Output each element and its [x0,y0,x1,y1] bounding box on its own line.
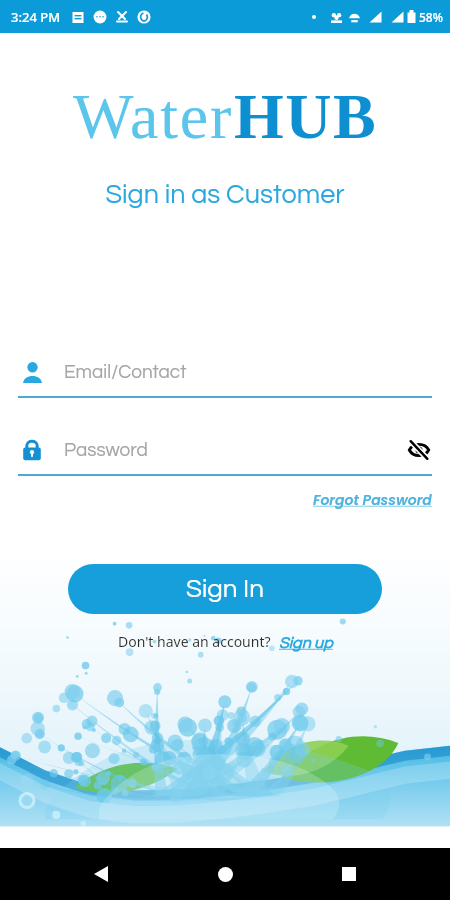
button[interactable]: Recent apps [326,851,372,897]
button[interactable]: Forgot Password [313,490,432,510]
staticText: Forgot Password [313,490,432,510]
staticText: 58% [419,9,443,25]
staticText: Email/Contact [64,362,187,382]
button[interactable]: Sign In [68,564,382,614]
button[interactable]: Back [78,851,124,897]
button[interactable]: Sign up [279,635,333,651]
staticText: Sign up [279,635,333,651]
staticText: Water [73,81,234,152]
staticText: Sign in as Customer [0,181,450,209]
button[interactable]: Home [202,851,248,897]
staticText: Password [64,440,148,460]
button[interactable]: Show password [406,437,432,463]
staticText: 3:24 PM [11,8,61,26]
staticText: Don't have an account? [118,632,271,651]
staticText: HUB [234,81,378,152]
button[interactable]: Email/Contact [18,358,432,386]
staticText: Sign In [186,576,264,603]
button[interactable]: Password [18,436,432,464]
